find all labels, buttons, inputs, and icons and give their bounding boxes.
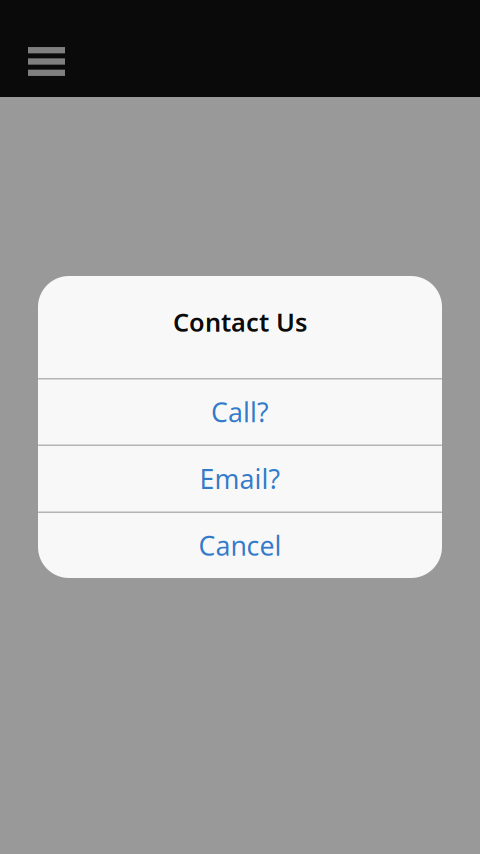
staticText: Cancel — [198, 528, 281, 563]
staticText: Email? — [199, 461, 280, 496]
button[interactable]: Cancel — [38, 513, 442, 578]
staticText: Call? — [211, 394, 269, 430]
staticText: Contact Us — [173, 305, 307, 339]
button[interactable]: Call? — [38, 379, 442, 444]
button[interactable]: Email? — [38, 446, 442, 511]
button[interactable]: Menu — [0, 0, 83, 97]
